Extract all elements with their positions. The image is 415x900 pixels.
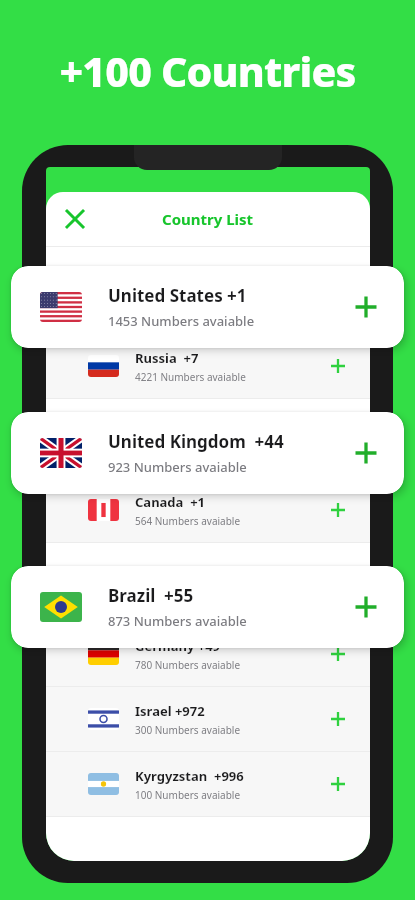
staticText: 1453 Numbers avaiable xyxy=(108,312,255,330)
button[interactable]: Add Russia +7 xyxy=(324,352,352,380)
staticText: +100 Countries xyxy=(0,43,415,99)
staticText: 100 Numbers avaiable xyxy=(135,788,241,802)
button[interactable]: Russia +7 xyxy=(46,334,370,398)
staticText: Kyrgyzstan +996 xyxy=(135,767,244,785)
staticText: Brazil +55 xyxy=(108,584,194,607)
staticText: Canada +1 xyxy=(135,493,206,511)
button[interactable]: United States +1 xyxy=(11,266,404,348)
button[interactable]: Close xyxy=(58,202,92,236)
staticText: United Kingdom +44 xyxy=(108,430,284,453)
button[interactable]: Add Kyrgyzstan +996 xyxy=(324,770,352,798)
button[interactable]: Brazil +55 xyxy=(11,566,404,648)
staticText: United States +1 xyxy=(108,284,247,307)
button[interactable]: Add United States +1 xyxy=(348,289,384,325)
staticText: Israel +972 xyxy=(135,702,205,720)
button[interactable]: Canada +1 xyxy=(46,478,370,542)
staticText: 780 Numbers avaiable xyxy=(135,658,241,672)
button[interactable]: Add Canada +1 xyxy=(324,496,352,524)
staticText: Germany +49 xyxy=(135,637,221,655)
button[interactable]: United Kingdom +44 xyxy=(11,412,404,494)
button[interactable]: Add Germany +49 xyxy=(324,640,352,668)
staticText: 873 Numbers avaiable xyxy=(108,612,247,630)
staticText: 4221 Numbers avaiable xyxy=(135,370,246,384)
button[interactable]: Kyrgyzstan +996 xyxy=(46,752,370,816)
button[interactable]: Add Israel +972 xyxy=(324,705,352,733)
staticText: Country List xyxy=(162,209,254,229)
staticText: 923 Numbers avaiable xyxy=(108,458,247,476)
button[interactable]: Germany +49 xyxy=(46,622,370,686)
staticText: Russia +7 xyxy=(135,349,199,367)
button[interactable]: Add Brazil +55 xyxy=(348,589,384,625)
staticText: 564 Numbers avaiable xyxy=(135,514,241,528)
staticText: 300 Numbers avaiable xyxy=(135,723,241,737)
button[interactable]: Israel +972 xyxy=(46,687,370,751)
button[interactable]: Add United Kingdom +44 xyxy=(348,435,384,471)
